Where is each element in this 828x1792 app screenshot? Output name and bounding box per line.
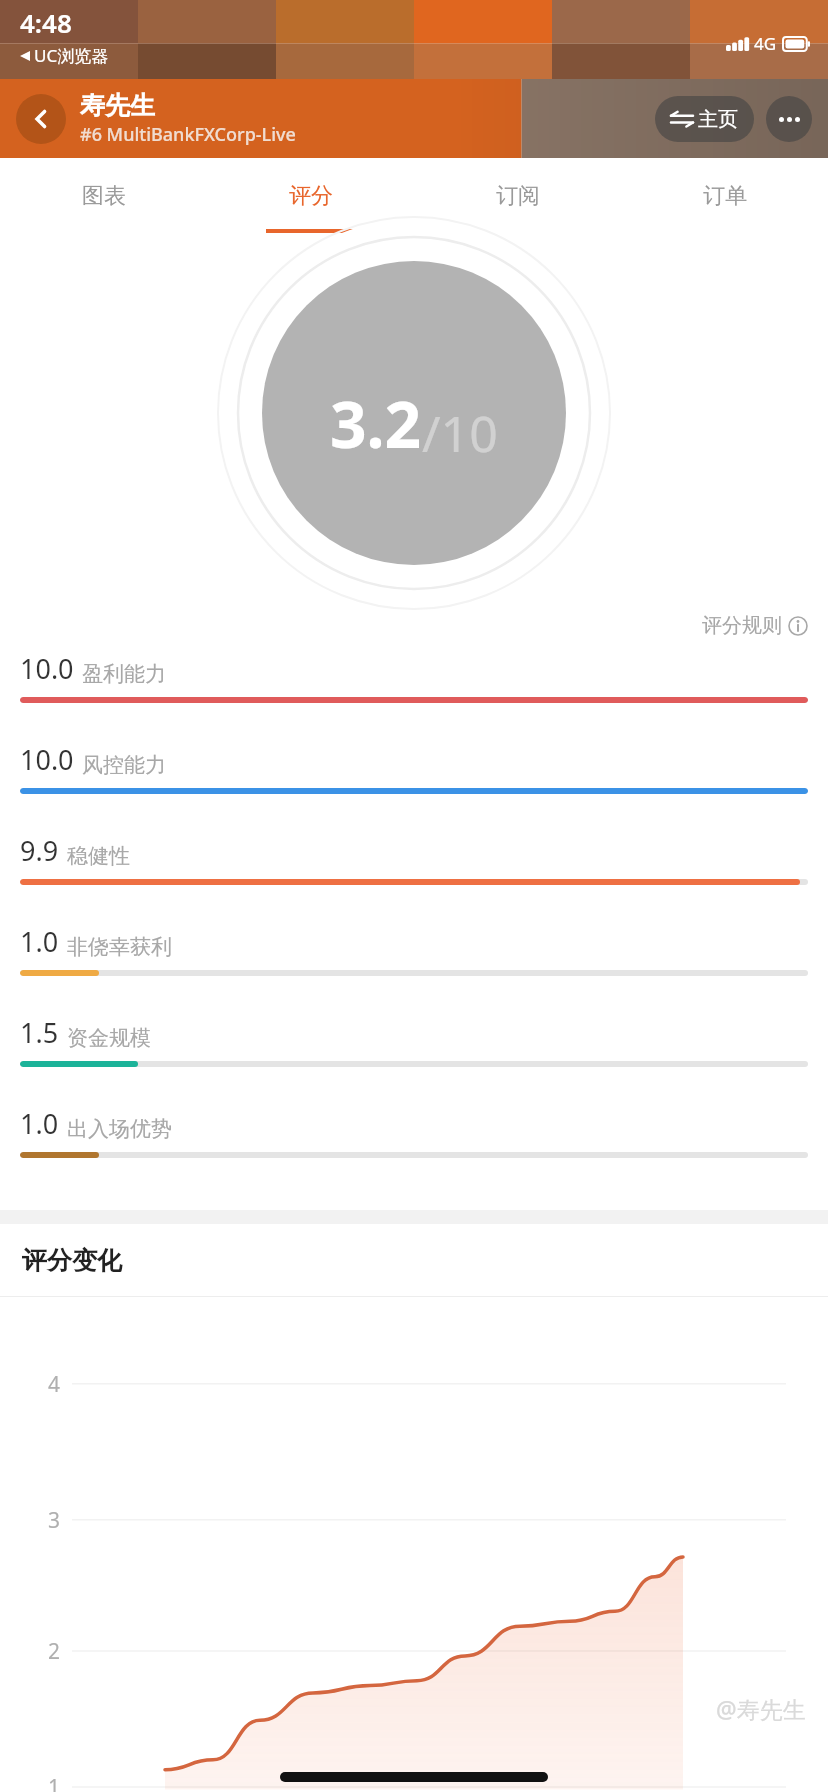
- staticText: 2: [48, 1637, 61, 1666]
- staticText: 主页: [698, 107, 738, 132]
- staticText: 订单: [703, 182, 747, 210]
- staticText: 盈利能力: [82, 661, 166, 687]
- button[interactable]: 1.0: [20, 923, 808, 1014]
- staticText: 10.0: [20, 650, 74, 687]
- staticText: 10.0: [20, 741, 74, 778]
- staticText: 资金规模: [67, 1025, 151, 1051]
- staticText: 4G: [754, 32, 777, 55]
- staticText: UC浏览器: [34, 44, 109, 67]
- button[interactable]: 图表: [0, 158, 207, 233]
- staticText: @寿先生: [716, 1693, 806, 1724]
- button[interactable]: 订阅: [414, 158, 621, 233]
- staticText: 评分: [289, 182, 333, 210]
- staticText: 评分规则: [702, 613, 782, 638]
- staticText: 1.0: [20, 1105, 59, 1142]
- button[interactable]: 订单: [621, 158, 828, 233]
- staticText: 9.9: [20, 832, 59, 869]
- staticText: 风控能力: [82, 752, 166, 778]
- button[interactable]: 9.9: [20, 832, 808, 923]
- staticText: 非侥幸获利: [67, 934, 172, 960]
- staticText: 1.5: [20, 1014, 59, 1051]
- staticText: 3.2: [330, 380, 422, 467]
- button[interactable]: Back: [16, 94, 66, 144]
- staticText: 4:48: [20, 5, 72, 40]
- staticText: 寿先生: [80, 90, 155, 121]
- button[interactable]: More options: [766, 96, 812, 142]
- button[interactable]: 1.5: [20, 1014, 808, 1105]
- button[interactable]: 1.0: [20, 1105, 808, 1196]
- staticText: 订阅: [496, 182, 540, 210]
- button[interactable]: 10.0: [20, 650, 808, 741]
- staticText: #6 MultiBankFXCorp-Live: [80, 122, 296, 147]
- staticText: 稳健性: [67, 843, 130, 869]
- staticText: 图表: [82, 182, 126, 210]
- button[interactable]: 主页: [655, 96, 754, 142]
- button[interactable]: 10.0: [20, 741, 808, 832]
- staticText: 出入场优势: [67, 1116, 172, 1142]
- button[interactable]: 评分: [207, 158, 414, 233]
- staticText: 评分变化: [22, 1245, 122, 1276]
- staticText: /10: [422, 399, 498, 467]
- staticText: 3: [48, 1506, 61, 1535]
- staticText: 4: [48, 1370, 61, 1399]
- button[interactable]: 评分规则: [702, 613, 808, 638]
- staticText: 1: [48, 1773, 61, 1792]
- staticText: 1.0: [20, 923, 59, 960]
